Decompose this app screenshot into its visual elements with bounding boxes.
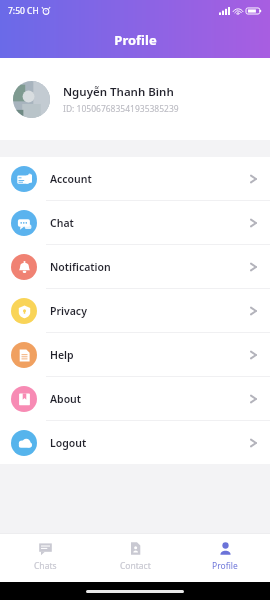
button[interactable]: Contact (90, 534, 180, 582)
staticText: ID: 105067683541935385239 (63, 103, 179, 115)
button[interactable]: Profile (180, 534, 270, 582)
staticText: Chat (50, 216, 74, 230)
staticText: Profile (212, 560, 238, 572)
button[interactable]: About (0, 377, 270, 420)
button[interactable]: Chats (0, 534, 90, 582)
button[interactable]: Chat (0, 201, 270, 244)
staticText: Profile (114, 31, 157, 49)
staticText: Chats (34, 560, 57, 572)
staticText: Privacy (50, 304, 87, 318)
staticText: Help (50, 348, 74, 362)
staticText: About (50, 392, 82, 406)
button[interactable]: Nguyễn Thanh Bình (0, 58, 270, 140)
staticText: 7:50 CH (8, 5, 39, 17)
staticText: Nguyễn Thanh Bình (63, 84, 174, 100)
staticText: Notification (50, 260, 111, 274)
button[interactable]: Logout (0, 421, 270, 464)
button[interactable]: Account (0, 157, 270, 200)
staticText: Contact (120, 560, 151, 572)
staticText: Account (50, 172, 92, 186)
button[interactable]: Privacy (0, 289, 270, 332)
button[interactable]: Help (0, 333, 270, 376)
staticText: Logout (50, 436, 87, 450)
button[interactable]: Notification (0, 245, 270, 288)
